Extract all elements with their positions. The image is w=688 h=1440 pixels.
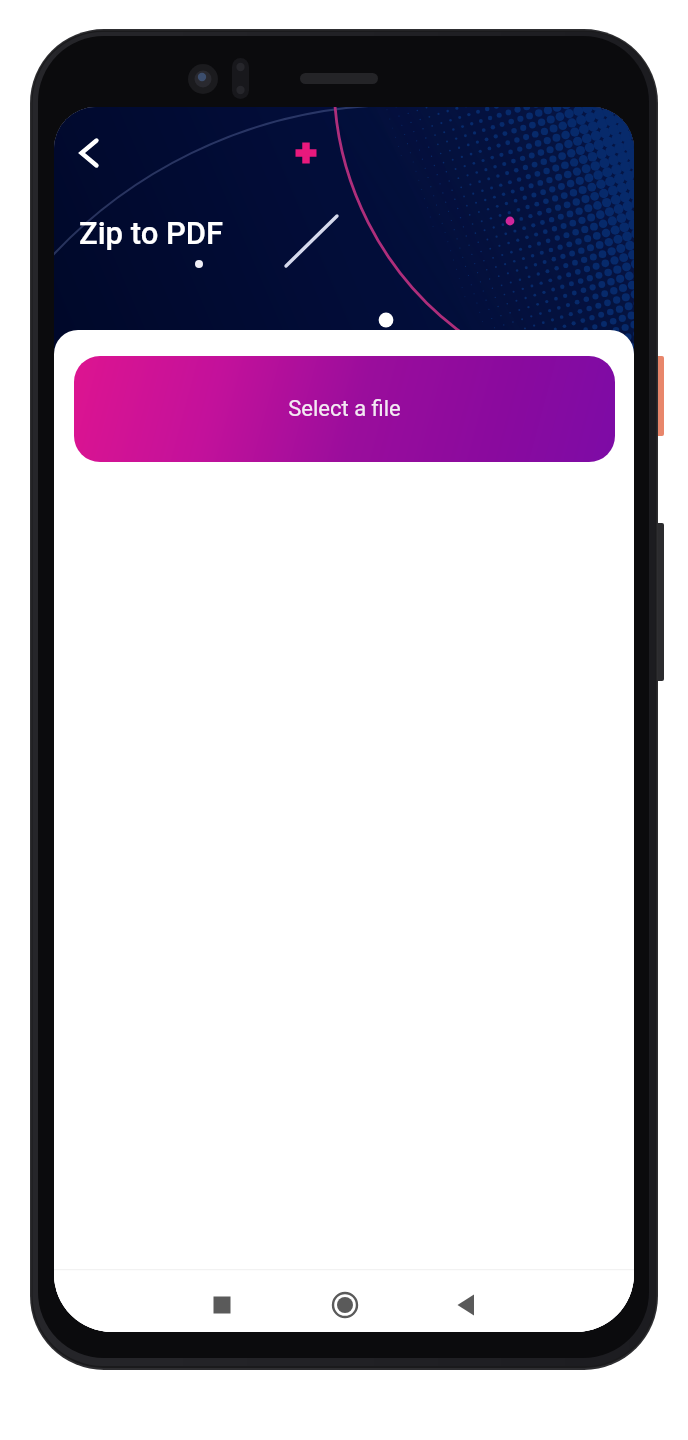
- button[interactable]: Select a file: [74, 356, 615, 462]
- button[interactable]: Back: [445, 1284, 487, 1326]
- staticText: Select a file: [288, 396, 401, 422]
- button[interactable]: Home: [324, 1284, 366, 1326]
- button[interactable]: Back: [63, 127, 115, 179]
- staticText: Zip to PDF: [79, 215, 224, 251]
- button[interactable]: Recents: [201, 1284, 243, 1326]
